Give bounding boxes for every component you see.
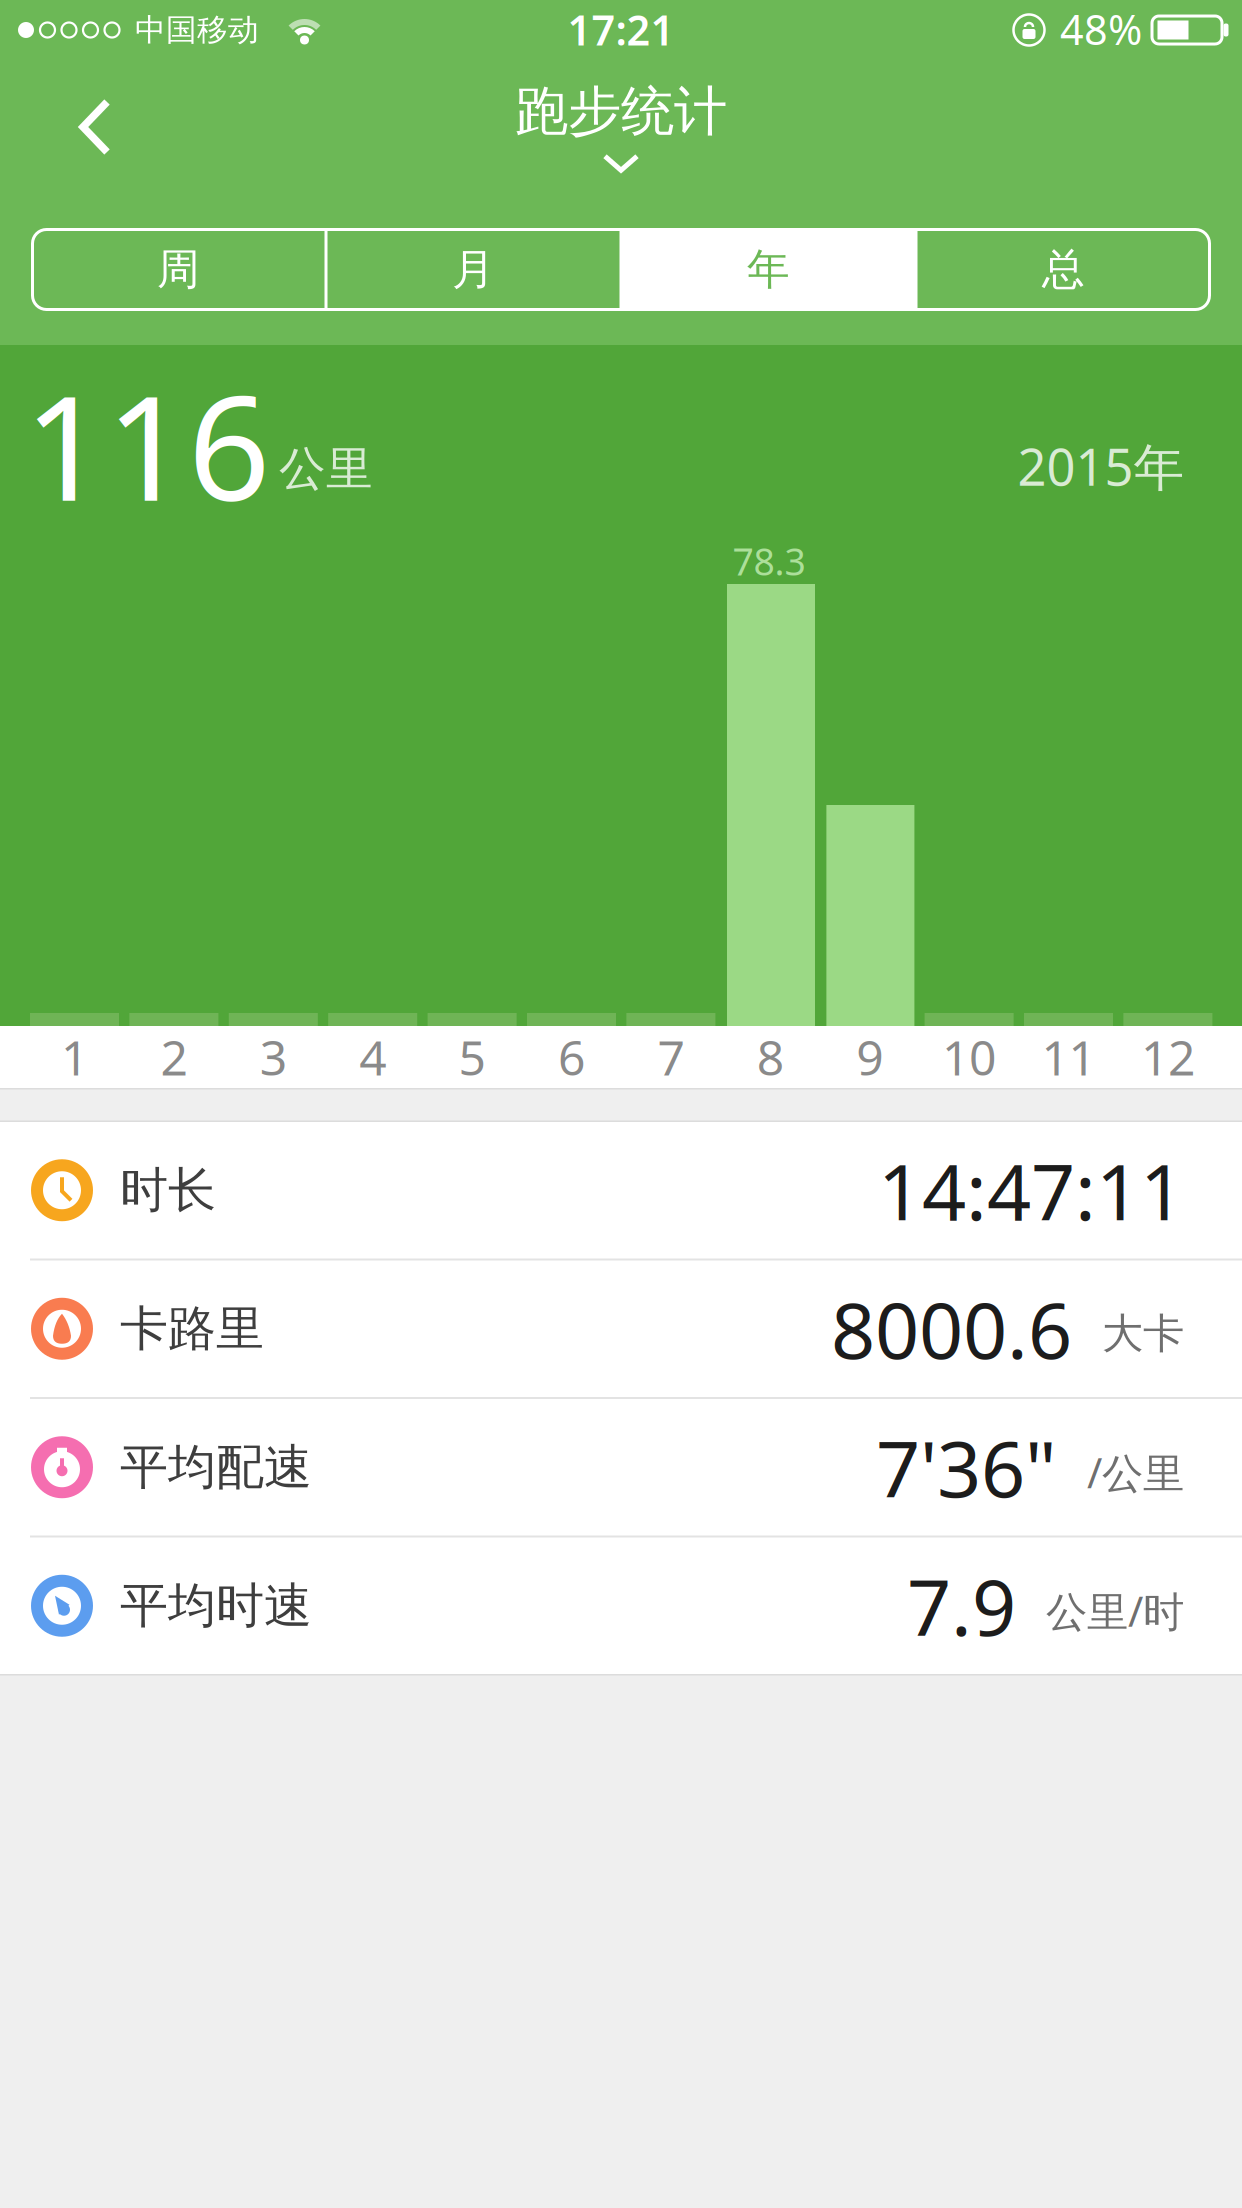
- button[interactable]: [63, 87, 127, 167]
- staticText: 7.9: [907, 1554, 1016, 1657]
- staticText: 14:47:11: [878, 1139, 1184, 1242]
- staticText: 公里/时: [1046, 1583, 1184, 1638]
- staticText: 3: [260, 1025, 287, 1089]
- staticText: 卡路里: [120, 1299, 264, 1358]
- staticText: 月: [452, 243, 495, 296]
- staticText: 9: [856, 1025, 883, 1089]
- staticText: 跑步统计: [515, 79, 727, 144]
- button[interactable]: 年: [621, 228, 916, 311]
- staticText: 大卡: [1102, 1308, 1184, 1359]
- staticText: 总: [1042, 243, 1085, 296]
- staticText: 平均时速: [120, 1576, 312, 1635]
- staticText: 6: [558, 1025, 585, 1089]
- staticText: 116: [24, 349, 270, 541]
- staticText: 7'36": [876, 1416, 1057, 1519]
- staticText: 2: [160, 1025, 187, 1089]
- staticText: 8000.6: [831, 1277, 1072, 1380]
- staticText: 5: [459, 1025, 486, 1089]
- button[interactable]: 总: [916, 228, 1211, 311]
- staticText: 公里: [279, 440, 373, 498]
- button[interactable]: 周: [31, 228, 326, 311]
- staticText: 10: [942, 1025, 996, 1089]
- staticText: 12: [1141, 1025, 1195, 1089]
- staticText: 周: [157, 243, 200, 296]
- staticText: 8: [757, 1025, 784, 1089]
- button[interactable]: 月: [326, 228, 621, 311]
- staticText: 17:21: [567, 2, 674, 57]
- button[interactable]: 跑步统计: [515, 79, 727, 172]
- staticText: 2015年: [1017, 432, 1184, 500]
- staticText: 时长: [120, 1161, 216, 1220]
- staticText: 48%: [1060, 2, 1142, 56]
- staticText: 1: [61, 1025, 88, 1089]
- staticText: 平均配速: [120, 1438, 312, 1497]
- staticText: /公里: [1087, 1445, 1184, 1500]
- staticText: 11: [1041, 1025, 1095, 1089]
- staticText: 78.3: [732, 536, 805, 586]
- staticText: 4: [359, 1025, 386, 1089]
- staticText: 7: [657, 1025, 684, 1089]
- staticText: 中国移动: [135, 11, 259, 49]
- staticText: 年: [747, 243, 790, 296]
